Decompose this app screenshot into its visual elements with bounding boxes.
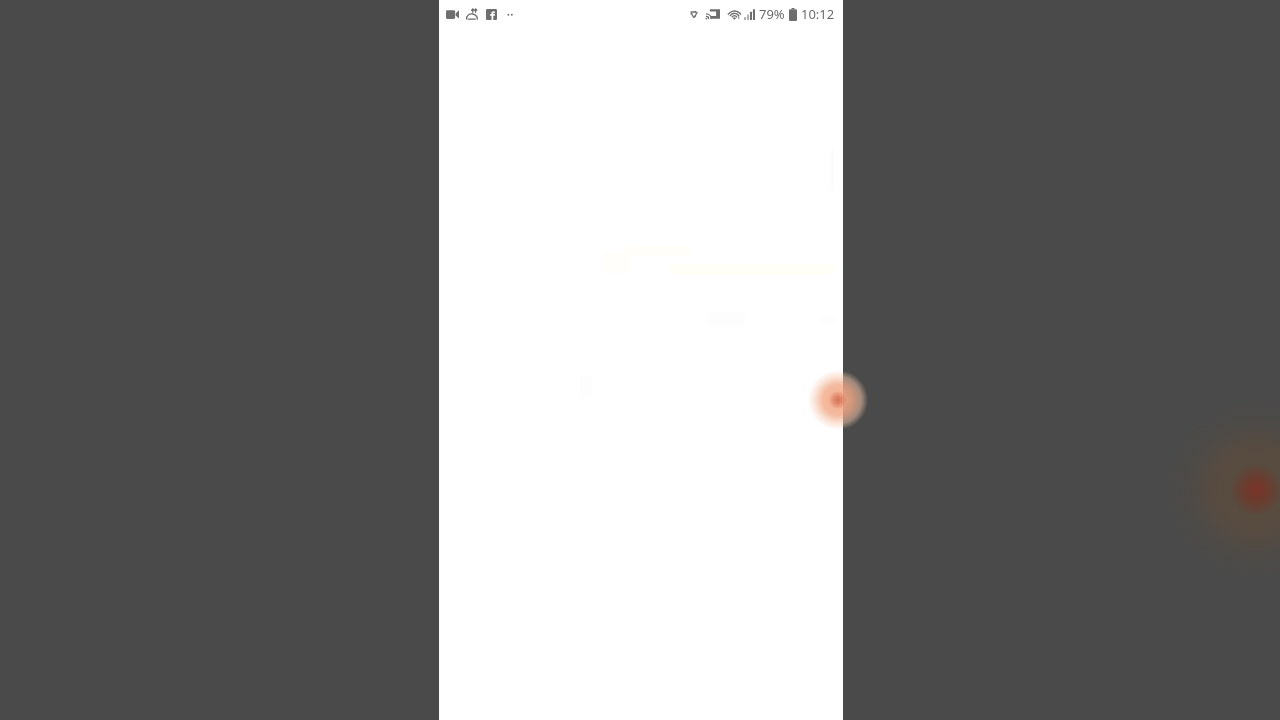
staticText: 10:12 xyxy=(801,5,835,23)
staticText: 79% xyxy=(759,5,785,23)
button[interactable]: Compose xyxy=(439,0,843,720)
